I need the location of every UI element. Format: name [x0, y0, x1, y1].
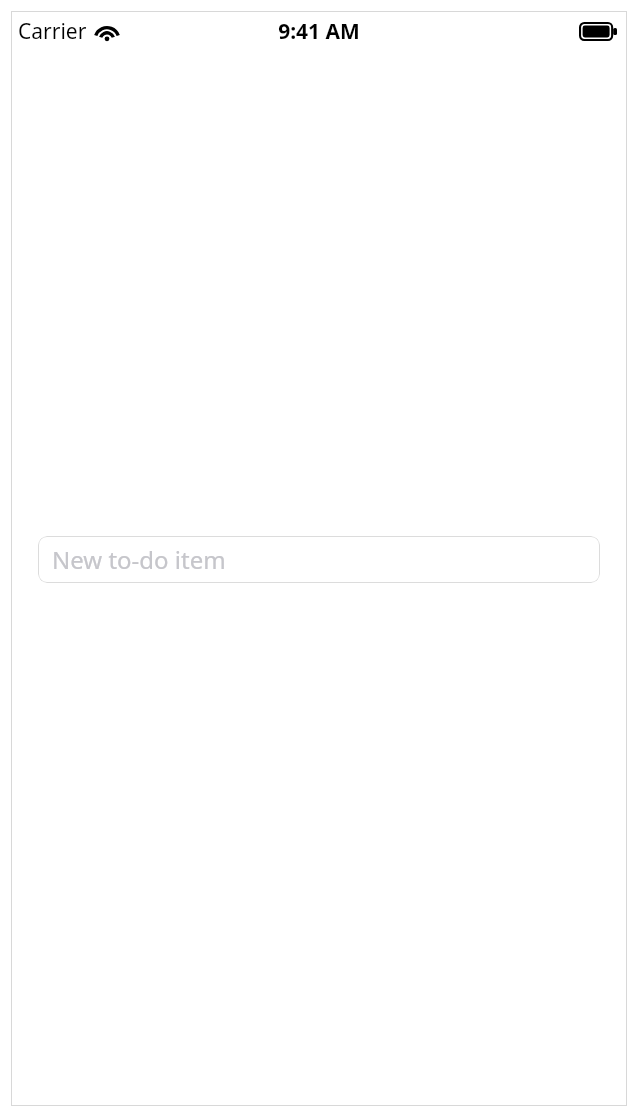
- button[interactable]: New to-do item: [38, 536, 600, 583]
- staticText: New to-do item: [52, 543, 226, 576]
- staticText: 9:41 AM: [278, 17, 360, 46]
- other: Wi-Fi signal: [94, 22, 120, 42]
- staticText: Carrier: [18, 17, 87, 46]
- other: Battery full: [579, 22, 617, 41]
